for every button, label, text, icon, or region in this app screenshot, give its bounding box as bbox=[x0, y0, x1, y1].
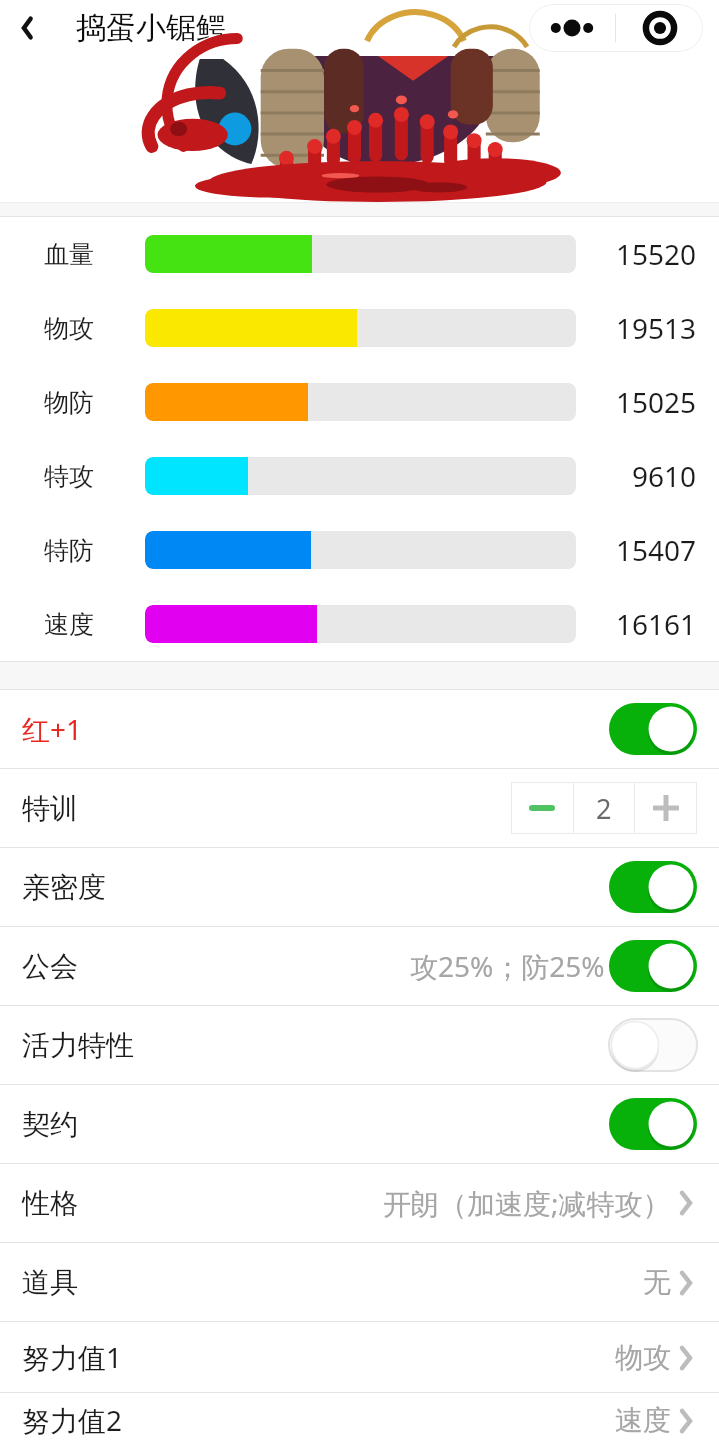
button[interactable]: 努力值1 bbox=[0, 1322, 719, 1392]
staticText: 捣蛋小锯鳄 bbox=[76, 9, 226, 47]
button[interactable]: 道具 bbox=[0, 1243, 719, 1321]
staticText: 特训 bbox=[22, 791, 78, 826]
staticText: 特防 bbox=[44, 535, 94, 566]
button[interactable]: Toggle on bbox=[609, 1098, 697, 1150]
staticText: 无 bbox=[643, 1265, 671, 1300]
button[interactable]: 努力值2 bbox=[0, 1393, 719, 1447]
staticText: 公会 bbox=[22, 949, 78, 984]
staticText: 15520 bbox=[616, 235, 697, 273]
button[interactable]: 特训 bbox=[0, 769, 719, 847]
button[interactable]: Toggle on bbox=[609, 703, 697, 755]
button[interactable]: Toggle off bbox=[609, 1019, 697, 1071]
staticText: 亲密度 bbox=[22, 870, 106, 905]
button[interactable]: 亲密度 bbox=[0, 848, 719, 926]
staticText: 2 bbox=[596, 790, 612, 827]
staticText: 契约 bbox=[22, 1107, 78, 1142]
button[interactable]: 契约 bbox=[0, 1085, 719, 1163]
button[interactable]: Back bbox=[0, 1, 54, 55]
staticText: 物攻 bbox=[615, 1340, 671, 1375]
staticText: 性格 bbox=[22, 1186, 78, 1221]
button[interactable]: 公会 bbox=[0, 927, 719, 1005]
staticText: 15025 bbox=[616, 383, 697, 421]
staticText: 9610 bbox=[632, 457, 697, 495]
staticText: 物防 bbox=[44, 387, 94, 418]
staticText: 开朗（加速度;减特攻） bbox=[383, 1184, 671, 1222]
button[interactable]: 性格 bbox=[0, 1164, 719, 1242]
staticText: 血量 bbox=[44, 239, 94, 270]
staticText: 速度 bbox=[615, 1403, 671, 1438]
staticText: 19513 bbox=[616, 309, 697, 347]
staticText: 攻25%；防25% bbox=[410, 947, 605, 985]
staticText: 特攻 bbox=[44, 461, 94, 492]
staticText: 活力特性 bbox=[22, 1028, 134, 1063]
button[interactable]: Toggle on bbox=[609, 940, 697, 992]
button[interactable]: Toggle on bbox=[609, 861, 697, 913]
button[interactable]: Close bbox=[616, 4, 703, 52]
button[interactable]: Decrease bbox=[511, 782, 573, 834]
staticText: 道具 bbox=[22, 1265, 78, 1300]
button[interactable]: 活力特性 bbox=[0, 1006, 719, 1084]
staticText: 物攻 bbox=[44, 313, 94, 344]
staticText: 努力值2 bbox=[22, 1401, 123, 1439]
staticText: 速度 bbox=[44, 609, 94, 640]
staticText: 红+1 bbox=[22, 710, 83, 748]
button[interactable]: 红+1 bbox=[0, 690, 719, 768]
staticText: 努力值1 bbox=[22, 1338, 123, 1376]
staticText: 15407 bbox=[616, 531, 697, 569]
button[interactable]: More bbox=[529, 4, 615, 52]
staticText: 16161 bbox=[616, 605, 697, 643]
button[interactable]: Increase bbox=[635, 782, 697, 834]
